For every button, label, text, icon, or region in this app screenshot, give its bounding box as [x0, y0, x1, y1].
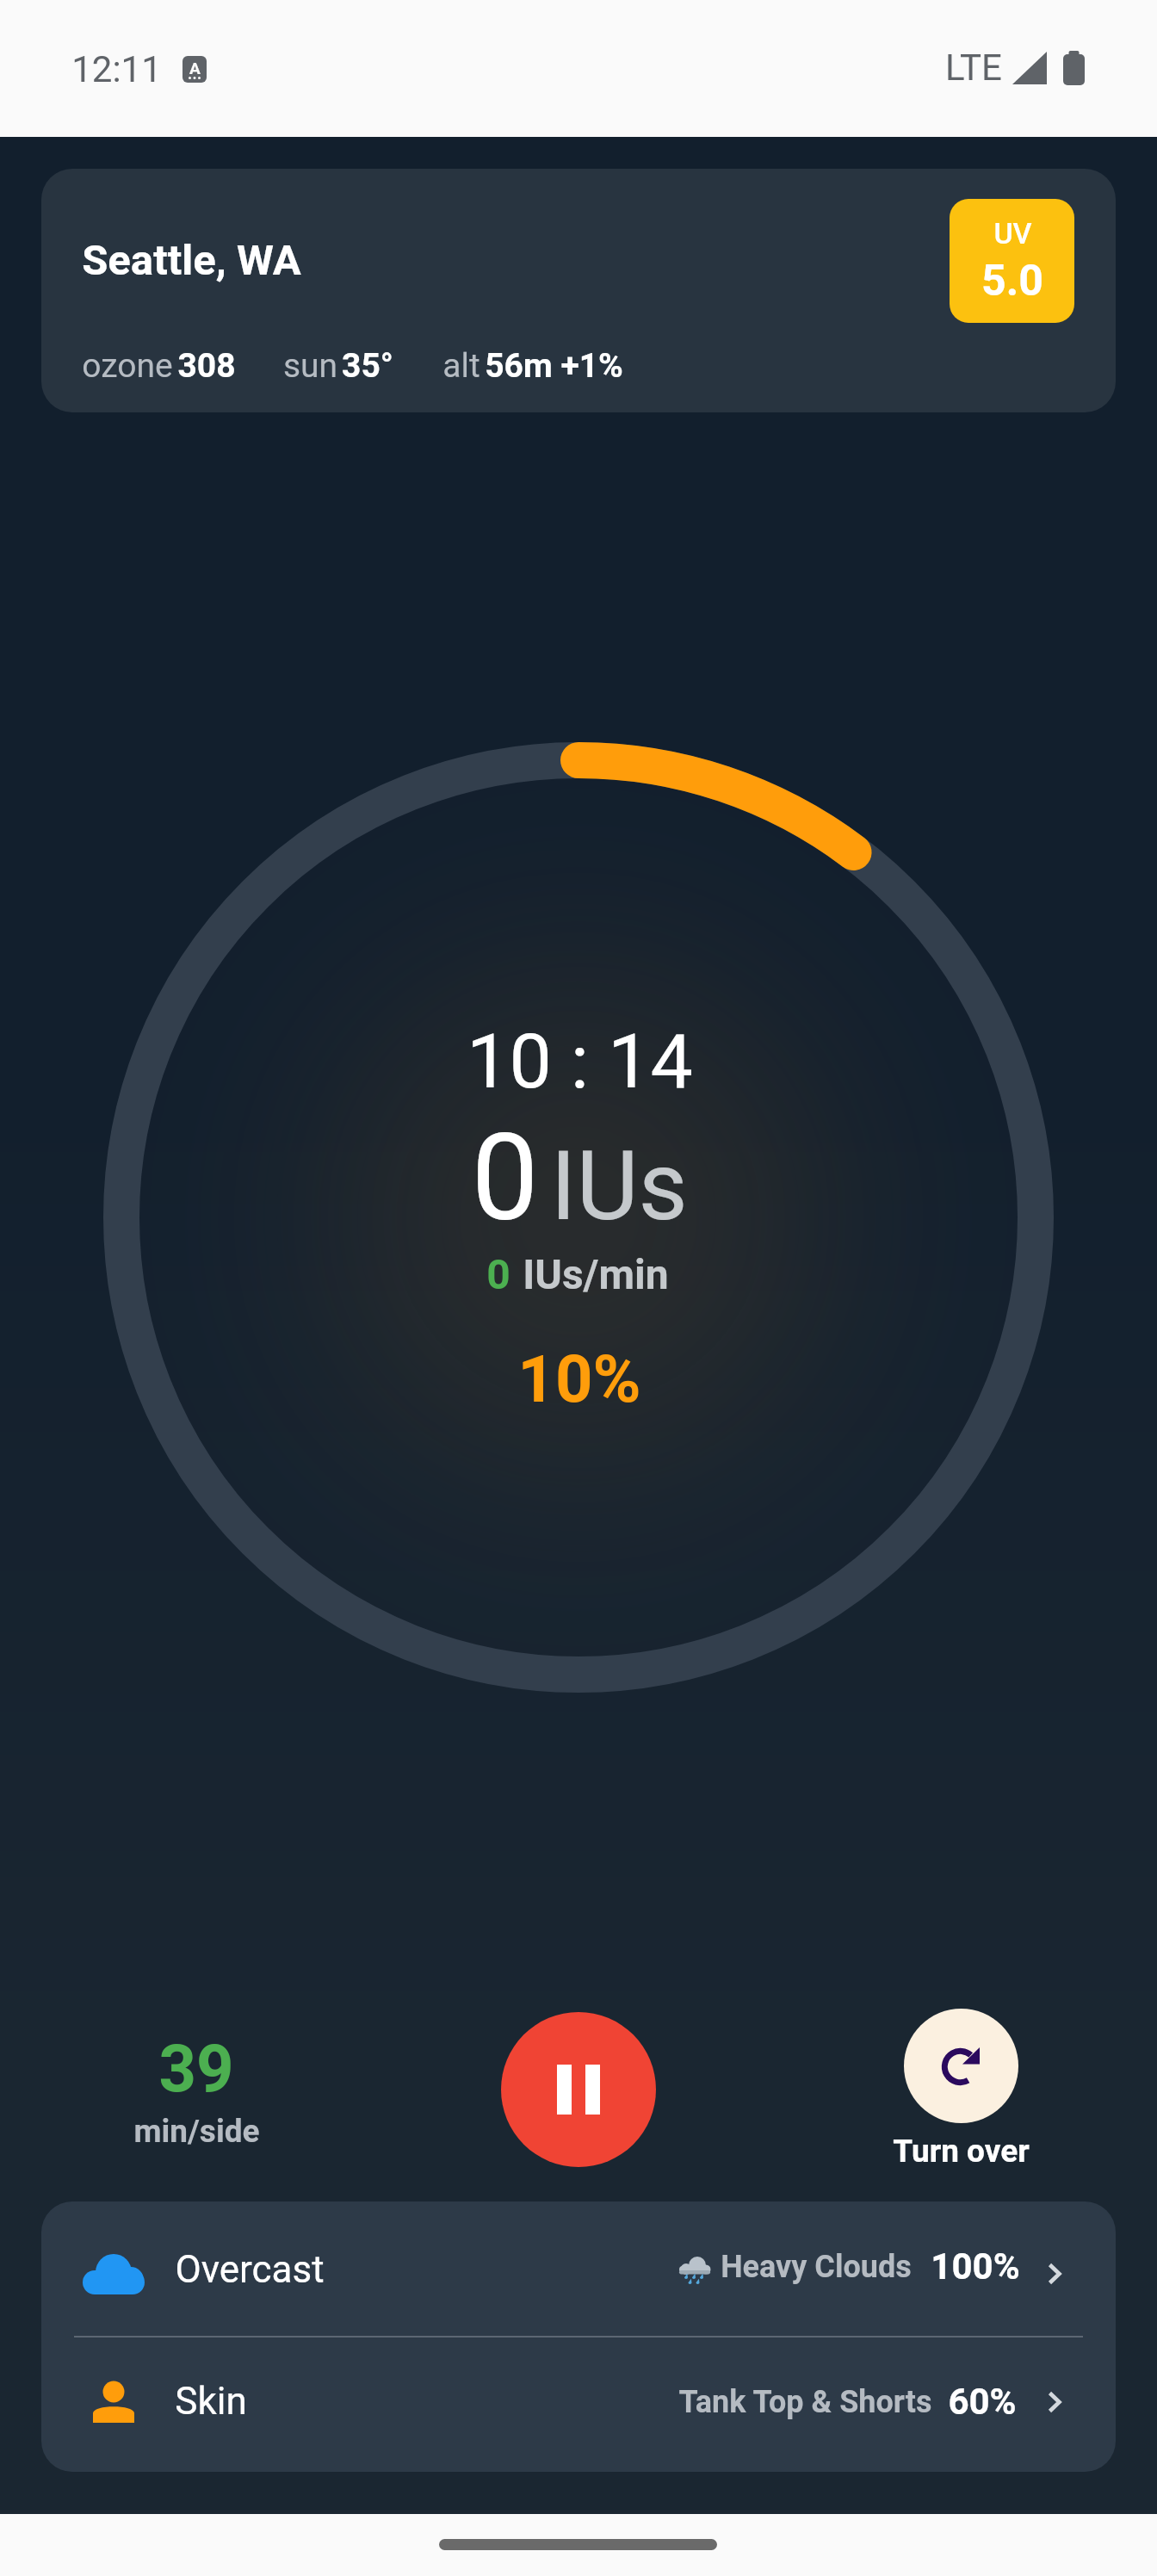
staticText: A — [189, 59, 201, 77]
staticText: Heavy Clouds — [721, 2249, 912, 2285]
button[interactable]: UV — [950, 199, 1074, 323]
staticText: Seattle, WA — [82, 236, 301, 285]
staticText: Turn over — [893, 2133, 1030, 2170]
staticText: ozone — [77, 346, 177, 386]
staticText: 12:11 — [71, 48, 162, 90]
staticText: sun — [279, 346, 342, 386]
staticText: 308 — [177, 346, 236, 386]
staticText: 100% — [931, 2245, 1020, 2288]
staticText: min/side — [133, 2113, 260, 2150]
staticText: 39 — [158, 2030, 234, 2107]
button[interactable]: Pause — [501, 2012, 656, 2167]
staticText: 10% — [517, 1341, 641, 1417]
staticText: alt — [438, 346, 485, 386]
staticText: Skin — [175, 2379, 247, 2424]
staticText: 35° — [342, 346, 393, 386]
staticText: UV — [993, 216, 1032, 251]
staticText: IUs — [550, 1130, 688, 1242]
button[interactable]: Skin — [41, 2338, 1116, 2472]
staticText: IUs/min — [523, 1250, 669, 1298]
staticText: 0 — [471, 1108, 539, 1248]
button[interactable]: Seattle, WA — [41, 169, 1116, 412]
staticText: LTE — [945, 46, 1002, 89]
staticText: 60% — [948, 2381, 1017, 2423]
button[interactable]: Overcast — [41, 2201, 1116, 2336]
button[interactable]: Turn over — [875, 2009, 1047, 2170]
staticText: 0 — [486, 1250, 510, 1298]
staticText: 56m +1% — [485, 346, 623, 386]
staticText: Tank Top & Shorts — [678, 2384, 932, 2420]
staticText: Overcast — [175, 2247, 325, 2292]
staticText: 10 : 14 — [467, 1017, 693, 1105]
staticText: 5.0 — [981, 256, 1043, 307]
